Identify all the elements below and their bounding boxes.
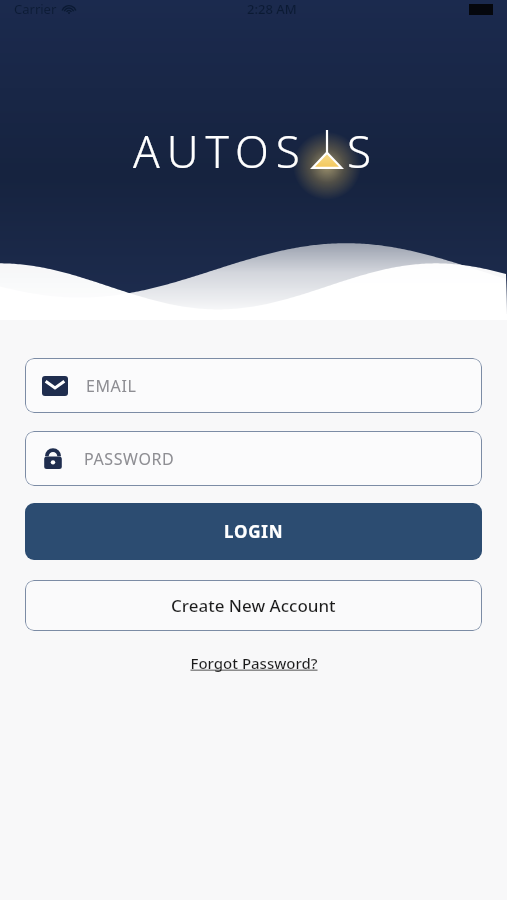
staticText: PASSWORD [84, 448, 175, 470]
staticText: S [347, 121, 374, 181]
staticText: Forgot Password? [190, 653, 318, 673]
staticText: LOGIN [224, 520, 284, 543]
staticText: AUTOS [133, 121, 307, 181]
button[interactable]: Create New Account [25, 580, 482, 631]
staticText: EMAIL [86, 375, 137, 397]
staticText: Carrier [14, 0, 57, 18]
button[interactable]: EMAIL [25, 358, 482, 413]
button[interactable]: Forgot Password? [25, 653, 482, 673]
staticText: 2:28 AM [247, 0, 297, 18]
button[interactable]: PASSWORD [25, 431, 482, 486]
staticText: Create New Account [171, 594, 336, 617]
button[interactable]: LOGIN [25, 503, 482, 560]
